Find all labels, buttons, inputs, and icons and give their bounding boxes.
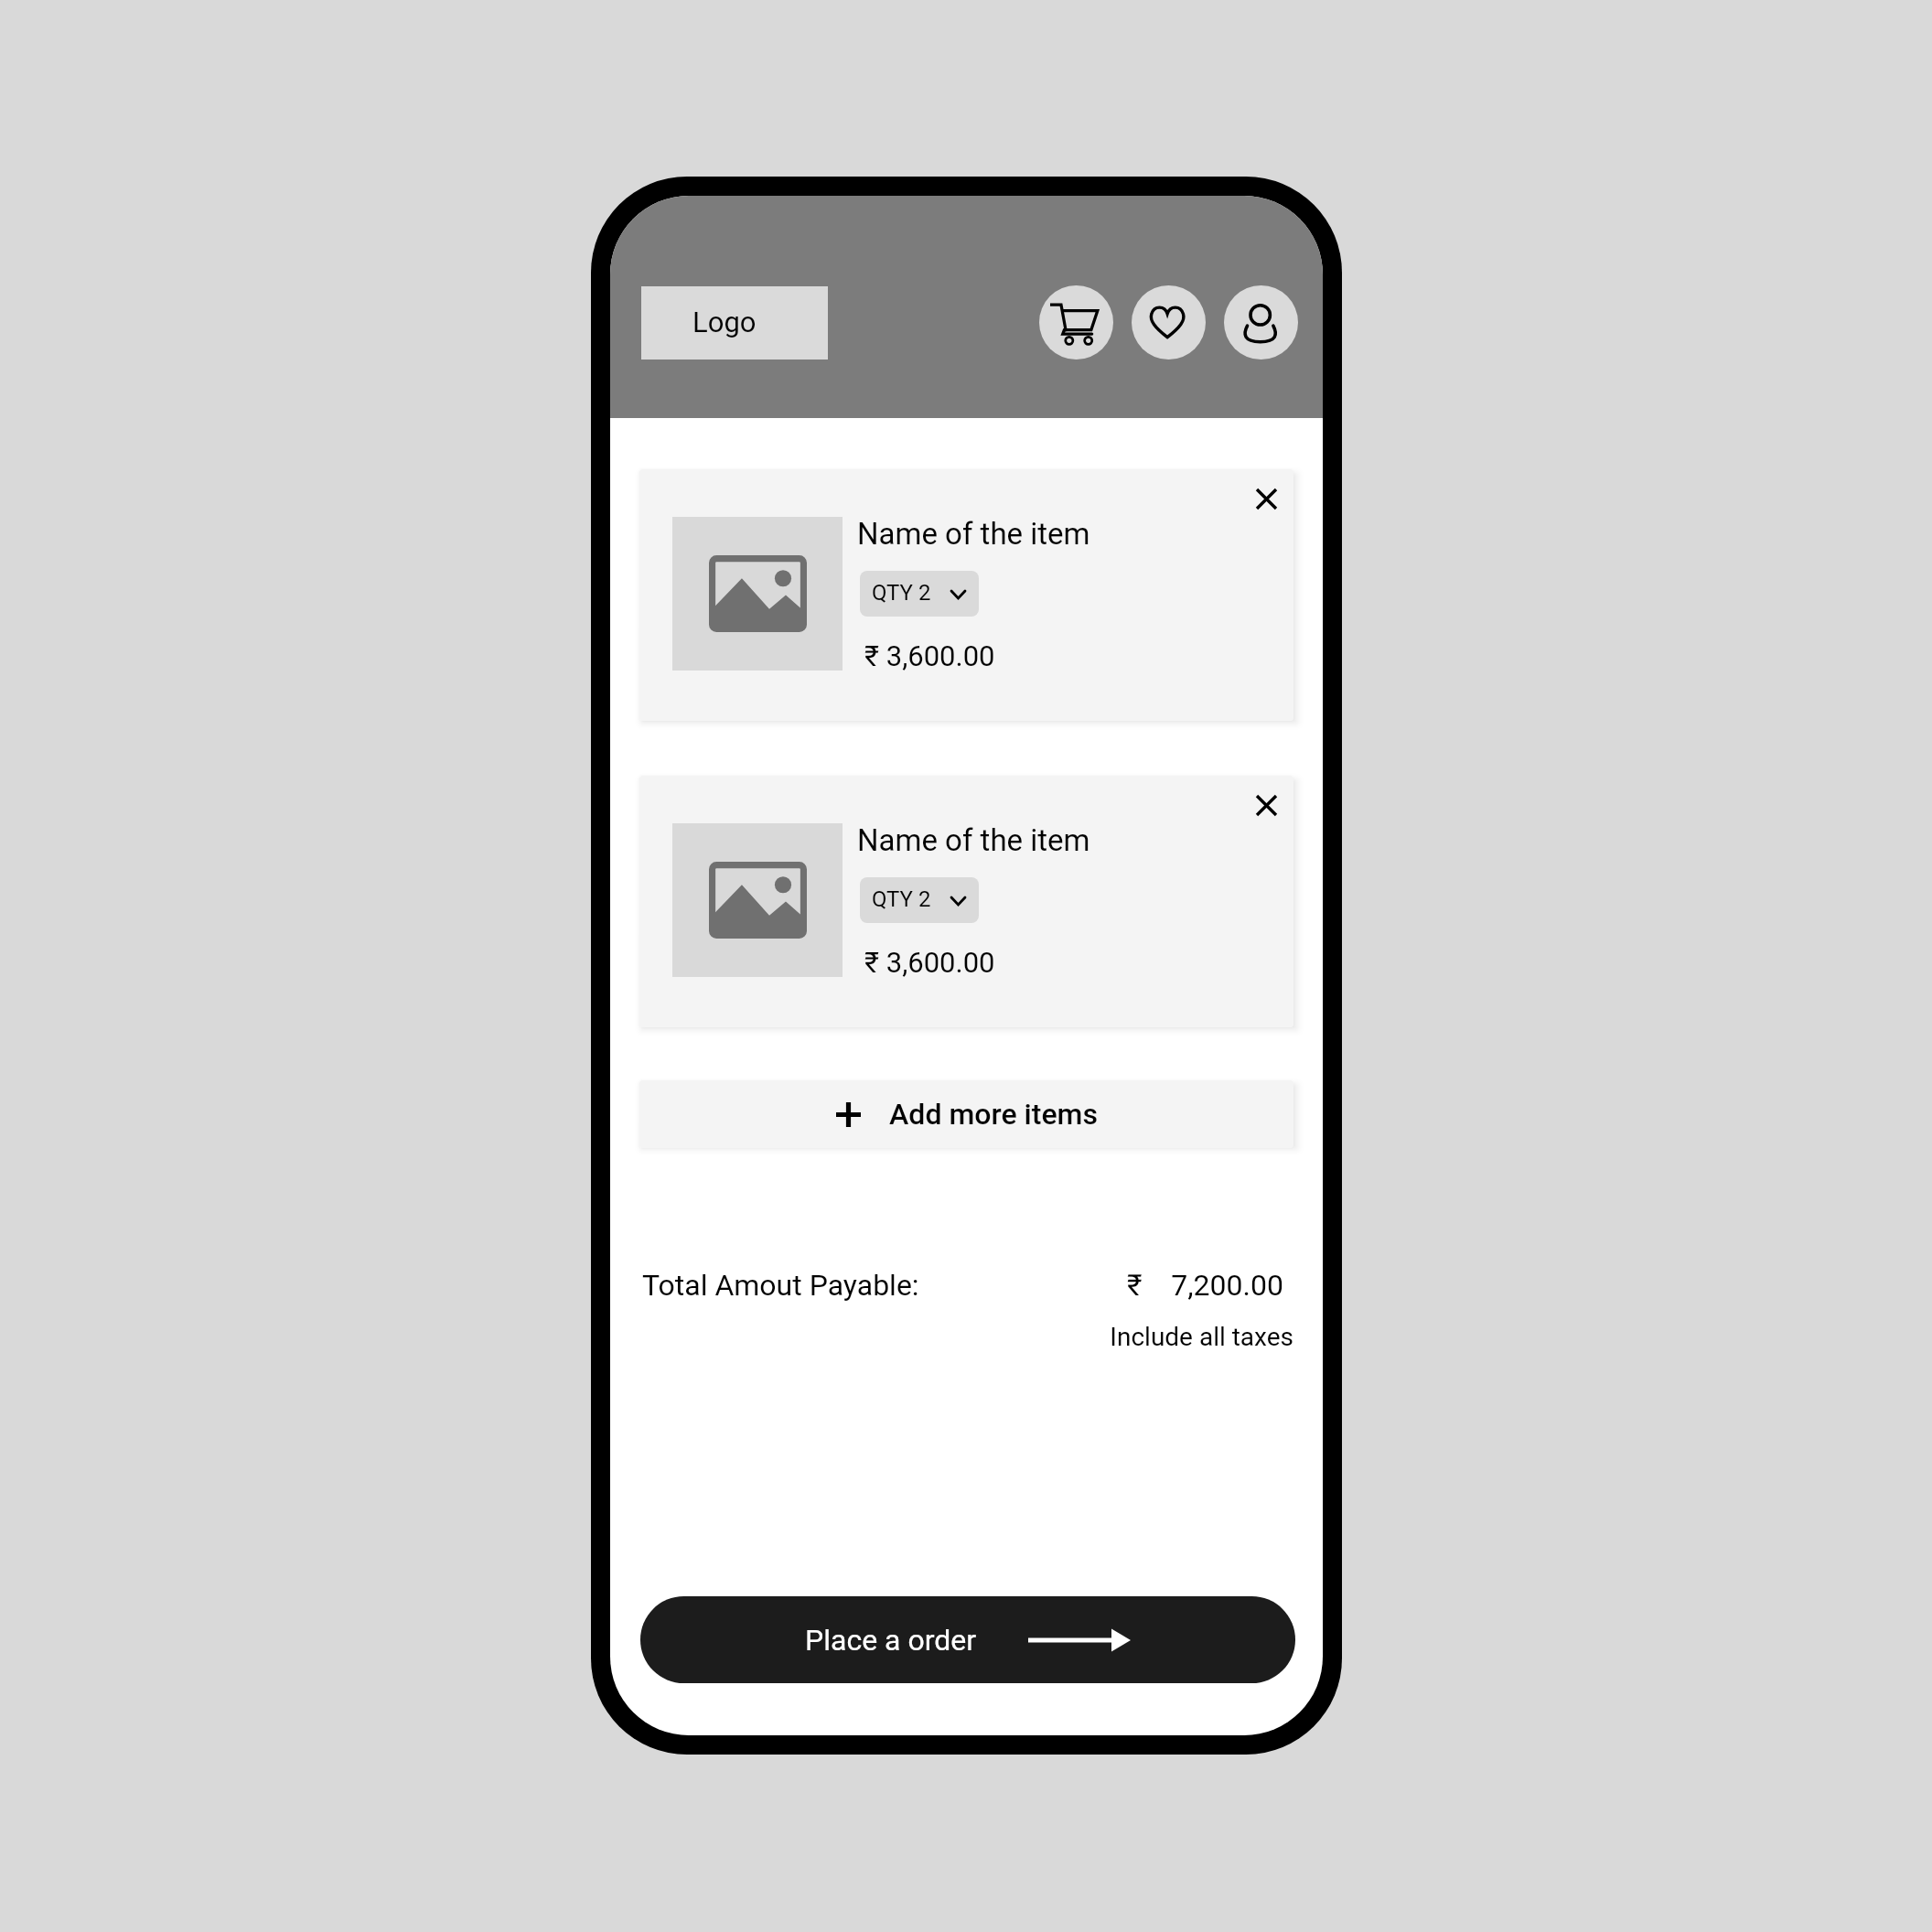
staticText: ₹ 7,200.00 [1127, 1268, 1283, 1303]
staticText: Total Amout Payable: [642, 1268, 919, 1303]
staticText: Add more items [889, 1097, 1098, 1132]
staticText: QTY 2 [872, 886, 931, 912]
button[interactable]: Name of the item [639, 776, 1293, 1027]
button[interactable]: Favourites [1132, 285, 1206, 360]
button[interactable]: Place a order [640, 1596, 1295, 1683]
staticText: Name of the item [857, 822, 1090, 858]
staticText: Logo [692, 306, 757, 338]
staticText: QTY 2 [872, 580, 931, 606]
staticText: ₹ 3,600.00 [864, 639, 995, 672]
staticText: Include all taxes [639, 1322, 1293, 1352]
button[interactable]: Logo [641, 286, 828, 360]
button[interactable]: Account [1224, 285, 1298, 360]
staticText: Name of the item [857, 516, 1090, 552]
button[interactable]: Add more items [639, 1080, 1293, 1148]
button[interactable]: QTY 2 [860, 877, 979, 923]
staticText: ₹ 3,600.00 [864, 946, 995, 979]
button[interactable]: Name of the item [639, 469, 1293, 721]
button[interactable]: Remove item [1240, 473, 1292, 524]
staticText: Place a order [805, 1623, 977, 1658]
button[interactable]: Remove item [1240, 779, 1292, 831]
button[interactable]: QTY 2 [860, 571, 979, 617]
button[interactable]: Cart [1039, 285, 1113, 360]
